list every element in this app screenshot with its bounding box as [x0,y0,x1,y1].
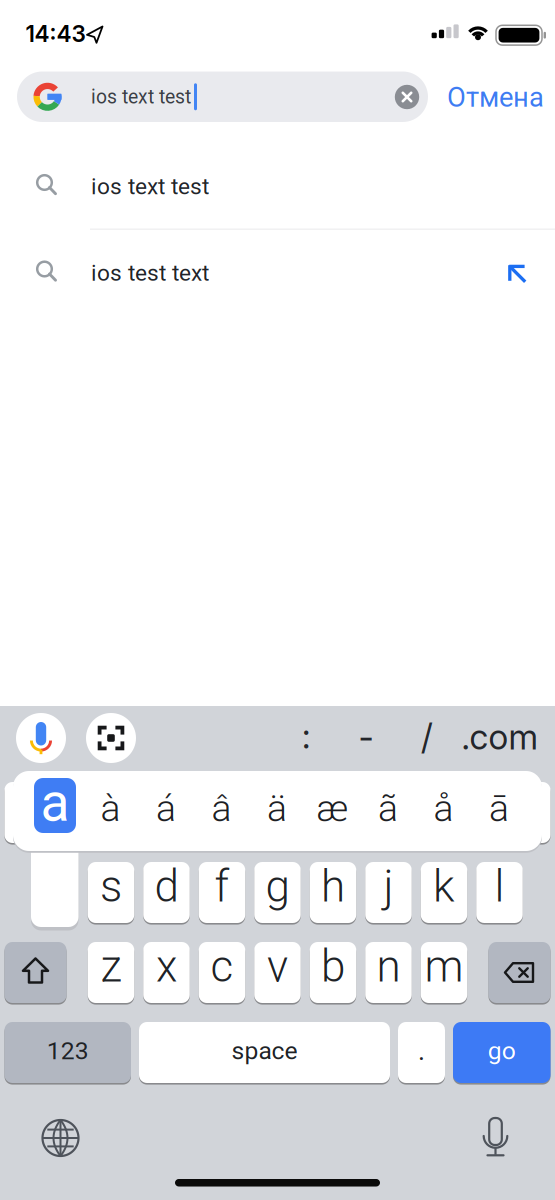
staticText: c [210,941,233,992]
staticText: a [40,771,69,834]
staticText: b [321,941,345,992]
staticText: - [358,716,373,758]
staticText: ios text test [91,173,209,200]
staticText: æ [316,787,348,830]
staticText: .com [461,716,538,758]
staticText: ios text test [91,85,191,108]
staticText: 14:43 [25,20,85,47]
staticText: 123 [47,1036,89,1065]
staticText: / [421,716,433,758]
staticText: ā [489,787,509,830]
staticText: ios test text [91,260,209,286]
staticText: h [321,861,345,912]
staticText: l [494,861,504,912]
staticText: å [433,787,453,830]
staticText: go [488,1036,516,1065]
staticText: : [302,715,310,757]
staticText: j [383,861,393,912]
staticText: s [100,861,122,912]
staticText: â [211,787,231,830]
staticText: space [231,1036,297,1065]
staticText: Отмена [447,81,544,113]
staticText: ä [267,787,287,830]
staticText: á [156,787,176,830]
staticText: . [418,1035,425,1066]
staticText: f [214,861,229,912]
staticText: k [433,861,455,912]
staticText: z [100,941,121,992]
staticText: x [156,941,177,992]
staticText: d [154,861,178,912]
staticText: ã [378,787,398,830]
staticText: g [265,861,289,912]
staticText: n [376,941,400,992]
staticText: à [100,787,120,830]
staticText: v [267,941,288,992]
staticText: m [424,941,463,992]
